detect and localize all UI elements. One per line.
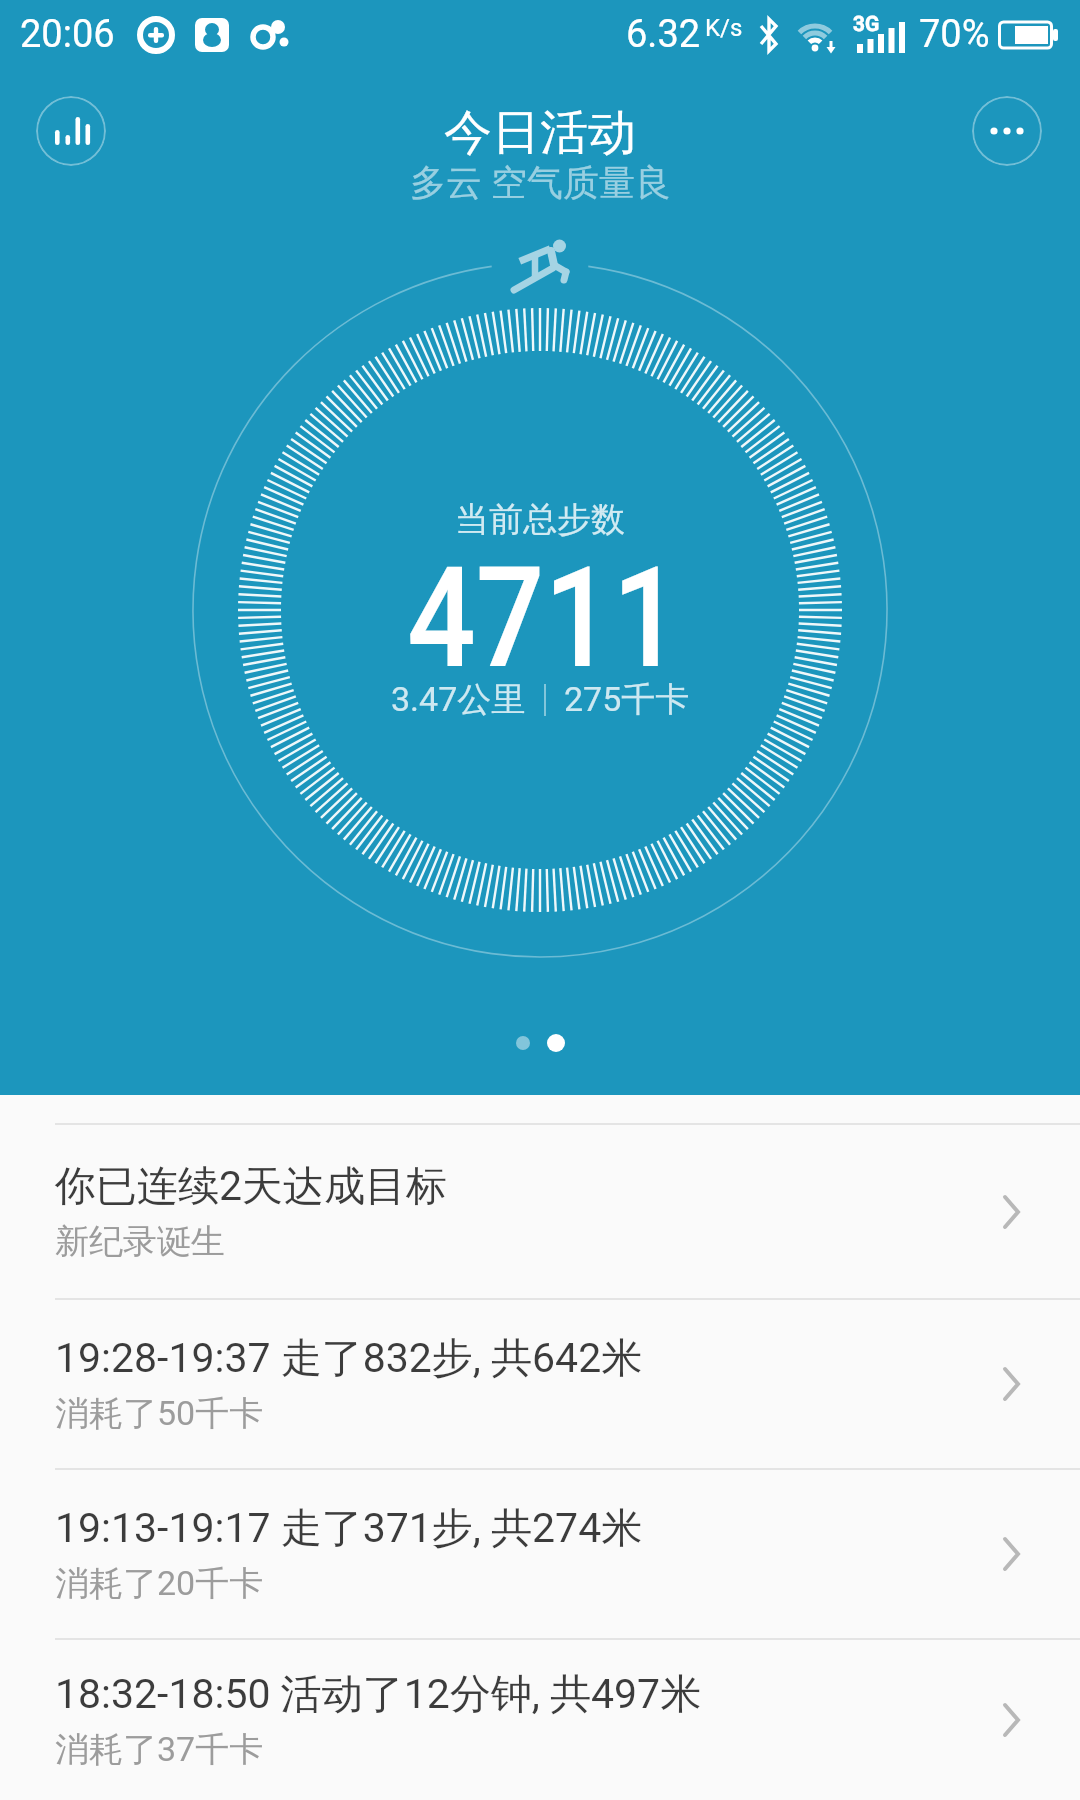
staticText: K/s	[705, 14, 743, 42]
staticText: 4711	[407, 536, 682, 700]
button[interactable]	[36, 96, 106, 166]
staticText: 6.32	[626, 12, 701, 57]
staticText: 70%	[919, 12, 990, 57]
staticText: 18:32-18:50 活动了12分钟, 共497米	[55, 1669, 702, 1721]
staticText: 消耗了20千卡	[55, 1562, 264, 1605]
staticText: 19:13-19:17 走了371步, 共274米	[55, 1503, 643, 1555]
staticText: 3.47公里	[391, 678, 526, 721]
button[interactable]	[972, 96, 1042, 166]
button[interactable]: 19:28-19:37 走了832步, 共642米	[0, 1300, 1080, 1468]
staticText: 275千卡	[564, 678, 690, 721]
button[interactable]: 19:13-19:17 走了371步, 共274米	[0, 1470, 1080, 1638]
button[interactable]: 你已连续2天达成目标	[0, 1125, 1080, 1298]
staticText: 你已连续2天达成目标	[55, 1161, 448, 1213]
staticText: 消耗了37千卡	[55, 1728, 264, 1771]
staticText: 19:28-19:37 走了832步, 共642米	[55, 1333, 643, 1385]
button[interactable]: 18:32-18:50 活动了12分钟, 共497米	[0, 1640, 1080, 1800]
staticText: 当前总步数	[455, 498, 625, 541]
staticText: 今日活动	[444, 103, 636, 163]
staticText: 20:06	[20, 12, 115, 57]
staticText: 新纪录诞生	[55, 1220, 225, 1263]
staticText: 3G	[853, 12, 880, 37]
staticText: 消耗了50千卡	[55, 1392, 264, 1435]
staticText: 多云 空气质量良	[410, 160, 671, 205]
